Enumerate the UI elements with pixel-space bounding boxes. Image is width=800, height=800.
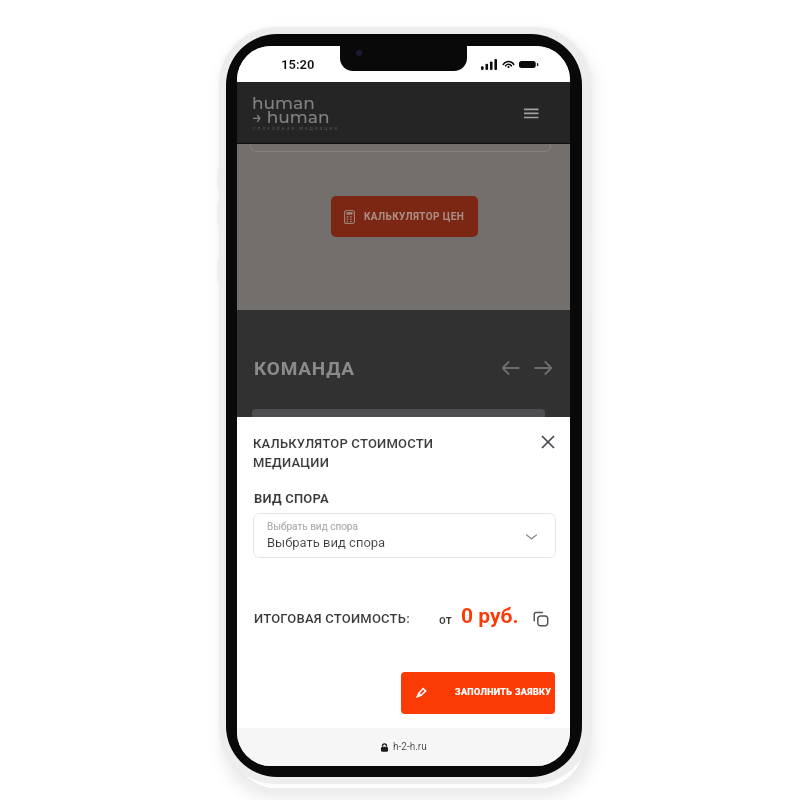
staticText: Выбрать вид спора [267,521,358,533]
staticText: → human [252,107,330,128]
staticText: Выбрать вид спора [267,535,386,550]
staticText: КОМАНДА [254,357,355,379]
staticText: ЗАПОЛНИТЬ ЗАЯВКУ [455,687,552,698]
staticText: human [252,93,315,114]
staticText: КАЛЬКУЛЯТОР ЦЕН [364,211,465,223]
staticText: 15:20 [281,57,315,72]
button[interactable]: Close [538,432,558,452]
button[interactable]: Previous [500,357,522,379]
staticText: 0 руб. [461,604,519,629]
staticText: спокойная медиация [253,125,339,131]
button[interactable]: Menu [517,98,546,128]
button[interactable]: ЗАПОЛНИТЬ ЗАЯВКУ [401,672,555,714]
button[interactable]: Выбрать вид спора [253,513,556,558]
staticText: ИТОГОВАЯ СТОИМОСТЬ: [254,611,410,626]
staticText: КАЛЬКУЛЯТОР СТОИМОСТИ МЕДИАЦИИ [253,436,434,470]
button[interactable]: Next [532,357,554,379]
staticText: от [439,613,452,627]
staticText: h-2-h.ru [393,741,427,753]
button[interactable]: КАЛЬКУЛЯТОР ЦЕН [331,196,478,237]
button[interactable]: h-2-h.ru [321,733,487,761]
button[interactable]: Copy [533,611,549,627]
staticText: ВИД СПОРА [254,491,329,506]
